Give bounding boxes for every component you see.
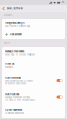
staticText: Manage mailboxes bbox=[5, 50, 24, 53]
staticText: 9:41 bbox=[61, 1, 64, 3]
staticText: Manage notification settings for each of… bbox=[5, 96, 35, 101]
button[interactable]: Spam addresses bbox=[2, 105, 65, 118]
button[interactable]: Add account bbox=[2, 30, 65, 39]
staticText: Add account bbox=[10, 33, 22, 36]
staticText: View as bbox=[5, 62, 14, 65]
staticText: Notifications bbox=[5, 93, 19, 96]
staticText: Show, hide, or reorder mailboxes bbox=[5, 53, 35, 56]
button[interactable]: Notifications bbox=[2, 89, 65, 105]
button[interactable]: Back bbox=[0, 5, 6, 12]
staticText: 16 blocked addresses bbox=[5, 112, 24, 114]
staticText: ACCOUNTS bbox=[4, 14, 12, 16]
staticText: Spam addresses bbox=[5, 108, 22, 111]
button[interactable]: info@tessa.design bbox=[2, 19, 65, 30]
staticText: Send email matches to Connor; on until w… bbox=[5, 80, 34, 85]
button[interactable]: View as bbox=[2, 59, 65, 72]
staticText: DISPLAY bbox=[4, 42, 10, 44]
staticText: Last synced 2 minutes ago bbox=[5, 25, 30, 27]
staticText: info@tessa.design bbox=[5, 21, 24, 24]
button[interactable]: Manage mailboxes bbox=[2, 47, 65, 59]
staticText: EMAIL SETTINGS bbox=[6, 7, 22, 10]
staticText: Auto forwarder bbox=[5, 76, 21, 79]
button[interactable]: Auto forwarder bbox=[2, 72, 65, 89]
staticText: Standard bbox=[5, 66, 13, 68]
